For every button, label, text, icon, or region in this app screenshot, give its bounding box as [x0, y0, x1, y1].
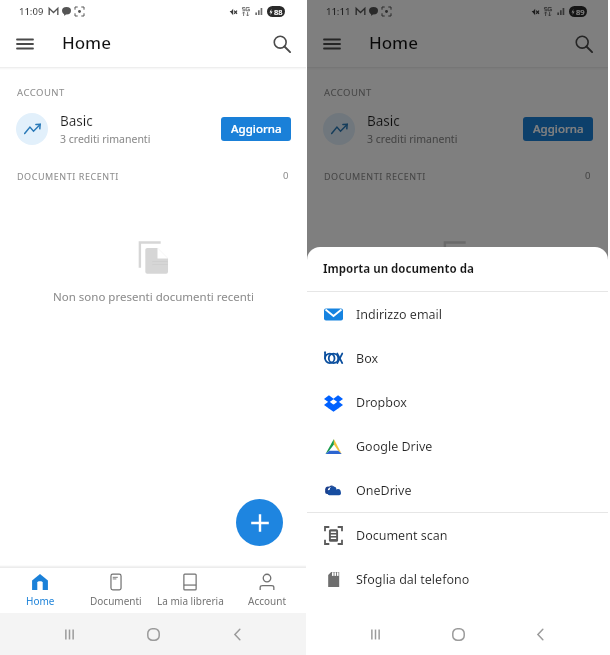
button[interactable]: Documenti	[78, 568, 154, 613]
button[interactable]: Home	[138, 619, 168, 649]
button[interactable]: Search	[568, 28, 600, 60]
button[interactable]: Recents	[360, 619, 390, 649]
staticText: Importa un documento da	[323, 261, 474, 277]
staticText: 0	[585, 169, 591, 182]
button[interactable]: Aggiorna	[523, 117, 593, 141]
staticText: La mia libreria	[157, 594, 224, 608]
staticText: Documenti	[90, 594, 142, 608]
staticText: Home	[369, 31, 418, 54]
staticText: 11:09	[19, 5, 44, 18]
button[interactable]: Sfoglia dal telefono	[307, 557, 608, 601]
staticText: Box	[356, 350, 379, 367]
staticText: Document scan	[356, 527, 448, 544]
button[interactable]: Home	[2, 568, 78, 613]
staticText: 3 crediti rimanenti	[367, 132, 458, 146]
button[interactable]: Box	[307, 336, 608, 380]
staticText: DOCUMENTI RECENTI	[324, 170, 426, 182]
staticText: Home	[26, 594, 55, 608]
button[interactable]: Document scan	[307, 513, 608, 557]
button[interactable]: Recents	[54, 619, 84, 649]
staticText: Aggiorna	[533, 121, 584, 137]
staticText: 0	[283, 169, 289, 182]
button[interactable]: Indirizzo email	[307, 292, 608, 336]
staticText: Basic	[60, 112, 93, 130]
staticText: Basic	[367, 112, 400, 130]
button[interactable]: Add document	[236, 499, 283, 546]
staticText: ACCOUNT	[324, 86, 372, 99]
staticText: OneDrive	[356, 482, 412, 499]
button[interactable]: Back	[525, 619, 555, 649]
staticText: Home	[62, 31, 111, 54]
staticText: Aggiorna	[231, 121, 282, 137]
staticText: Google Drive	[356, 438, 433, 455]
staticText: 89	[576, 7, 585, 17]
staticText: Sfoglia dal telefono	[356, 571, 470, 588]
staticText: Indirizzo email	[356, 306, 443, 323]
button[interactable]: Menu	[316, 28, 348, 60]
staticText: 3 crediti rimanenti	[60, 132, 151, 146]
button[interactable]: OneDrive	[307, 468, 608, 512]
staticText: Non sono presenti documenti recenti	[357, 289, 558, 305]
staticText: Account	[248, 594, 287, 608]
button[interactable]: La mia libreria	[148, 568, 232, 613]
button[interactable]: Home	[443, 619, 473, 649]
staticText: 88	[274, 7, 283, 17]
staticText: 11:11	[326, 5, 351, 18]
staticText: Dropbox	[356, 394, 407, 411]
button[interactable]: Google Drive	[307, 424, 608, 468]
button[interactable]: Dropbox	[307, 380, 608, 424]
staticText: DOCUMENTI RECENTI	[17, 170, 119, 182]
staticText: ACCOUNT	[17, 86, 65, 99]
staticText: Non sono presenti documenti recenti	[53, 289, 254, 305]
button[interactable]: Account	[229, 568, 305, 613]
button[interactable]: Menu	[9, 28, 41, 60]
button[interactable]: Aggiorna	[221, 117, 291, 141]
button[interactable]: Back	[222, 619, 252, 649]
button[interactable]: Search	[266, 28, 298, 60]
